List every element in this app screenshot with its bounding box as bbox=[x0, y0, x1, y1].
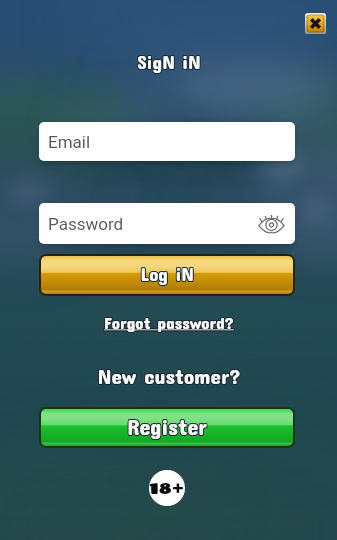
staticText: Register bbox=[126, 412, 206, 438]
button[interactable]: Password bbox=[39, 203, 295, 244]
staticText: New customer? bbox=[97, 363, 241, 388]
staticText: Log iN bbox=[139, 263, 193, 285]
staticText: Forgot password? bbox=[104, 312, 234, 332]
staticText: Register bbox=[127, 414, 207, 440]
staticText: Forgot password? bbox=[104, 311, 234, 331]
staticText: New customer? bbox=[96, 362, 240, 387]
staticText: Password bbox=[48, 214, 124, 234]
staticText: SigN iN bbox=[137, 50, 201, 72]
button[interactable]: Show password bbox=[256, 211, 286, 237]
staticText: Register bbox=[128, 414, 208, 440]
staticText: Log iN bbox=[139, 262, 193, 284]
staticText: New customer? bbox=[96, 364, 240, 389]
staticText: New customer? bbox=[98, 364, 242, 389]
staticText: SigN iN bbox=[137, 51, 201, 73]
staticText: Log iN bbox=[140, 262, 194, 284]
staticText: Forgot password? bbox=[103, 312, 233, 332]
staticText: SigN iN bbox=[136, 50, 200, 72]
button[interactable]: Close bbox=[305, 13, 326, 34]
staticText: Register bbox=[127, 412, 207, 438]
button[interactable]: Register bbox=[39, 407, 295, 448]
button[interactable]: Email bbox=[39, 122, 295, 161]
staticText: SigN iN bbox=[136, 51, 200, 73]
staticText: SigN iN bbox=[138, 50, 202, 72]
staticText: Register bbox=[128, 413, 208, 439]
staticText: New customer? bbox=[97, 362, 241, 387]
staticText: Forgot password? bbox=[105, 313, 235, 333]
staticText: Email bbox=[48, 132, 91, 152]
button[interactable]: Forgot password? bbox=[0, 311, 337, 333]
staticText: 18+ bbox=[149, 478, 185, 497]
staticText: Log iN bbox=[140, 261, 194, 283]
other: 18 plus age rating bbox=[149, 470, 185, 506]
staticText: Forgot password? bbox=[105, 312, 235, 332]
staticText: Register bbox=[126, 413, 206, 439]
staticText: Register bbox=[126, 414, 206, 440]
staticText: Register bbox=[128, 412, 208, 438]
staticText: SigN iN bbox=[138, 51, 202, 73]
staticText: Log iN bbox=[141, 262, 195, 284]
staticText: New customer? bbox=[98, 363, 242, 388]
staticText: Log iN bbox=[141, 261, 195, 283]
staticText: SigN iN bbox=[137, 49, 201, 71]
staticText: Log iN bbox=[140, 263, 194, 285]
staticText: Register bbox=[127, 413, 207, 439]
staticText: Forgot password? bbox=[103, 313, 233, 333]
staticText: Log iN bbox=[141, 263, 195, 285]
staticText: New customer? bbox=[98, 362, 242, 387]
staticText: New customer? bbox=[96, 363, 240, 388]
staticText: SigN iN bbox=[136, 49, 200, 71]
staticText: Forgot password? bbox=[105, 311, 235, 331]
staticText: Forgot password? bbox=[103, 311, 233, 331]
staticText: New customer? bbox=[97, 364, 241, 389]
staticText: Forgot password? bbox=[104, 313, 234, 333]
staticText: Log iN bbox=[139, 261, 193, 283]
button[interactable]: Log iN bbox=[39, 254, 295, 296]
staticText: SigN iN bbox=[138, 49, 202, 71]
